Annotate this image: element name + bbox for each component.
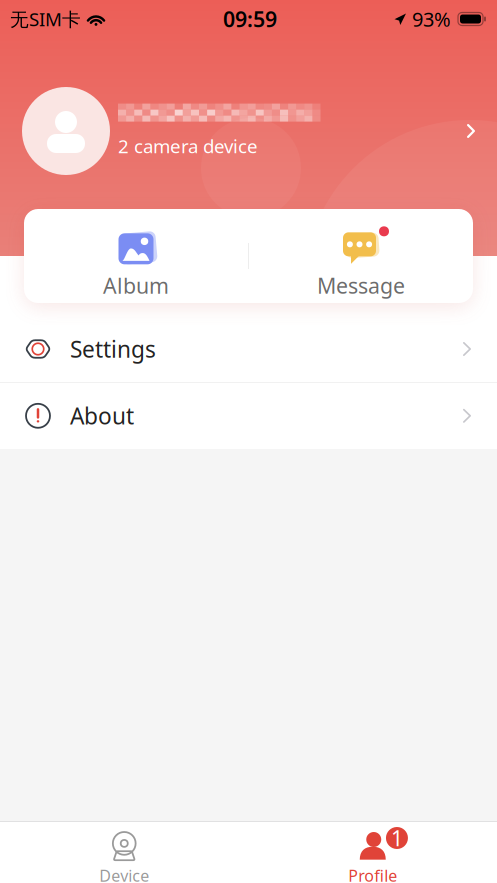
button[interactable]: Album — [24, 209, 248, 303]
staticText: 93% — [412, 6, 451, 32]
button[interactable]: Settings — [0, 316, 497, 382]
staticText: Message — [317, 271, 405, 300]
button[interactable]: Device — [0, 822, 248, 883]
staticText: Settings — [70, 334, 156, 364]
staticText: Album — [103, 271, 169, 300]
staticText: 09:59 — [223, 5, 277, 33]
staticText: About — [70, 401, 134, 431]
staticText: 2 camera device — [118, 134, 258, 158]
staticText: 1 — [391, 824, 403, 852]
button[interactable]: Message — [249, 209, 473, 303]
staticText: Profile — [348, 865, 397, 883]
button[interactable]: 1 — [248, 822, 497, 883]
staticText: Device — [99, 865, 149, 883]
staticText: 无SIM卡 — [10, 7, 81, 31]
button[interactable]: 2 camera device — [0, 85, 497, 177]
button[interactable]: About — [0, 383, 497, 449]
